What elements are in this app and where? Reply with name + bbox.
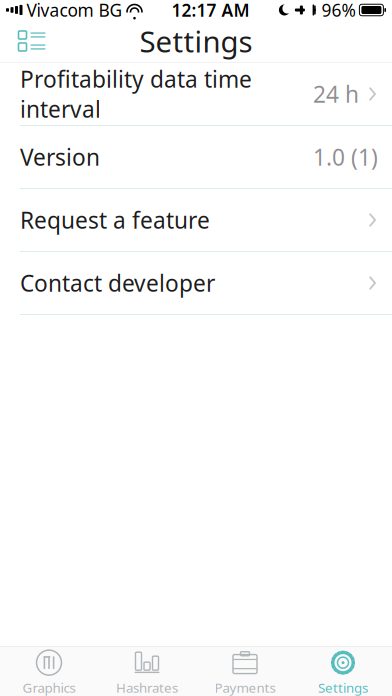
staticText: 24 h (313, 79, 359, 109)
staticText: Version (20, 142, 100, 172)
staticText: Contact developer (20, 268, 215, 298)
staticText: Profitability data time interval (20, 64, 252, 124)
staticText: Vivacom BG (26, 0, 122, 21)
button[interactable]: Graphics (0, 643, 98, 696)
button[interactable]: Contact developer (0, 252, 392, 315)
staticText: 12:17 AM (171, 0, 249, 21)
staticText: 1.0 (1) (313, 142, 378, 172)
button[interactable]: Payments (196, 643, 294, 696)
button[interactable]: Request a feature (0, 189, 392, 252)
button[interactable]: Version (0, 126, 392, 189)
button[interactable]: Profitability data time interval (0, 63, 392, 126)
staticText: Request a feature (20, 205, 210, 235)
button[interactable]: Settings (294, 643, 392, 696)
staticText: Hashrates (116, 679, 178, 696)
button[interactable]: Hashrates (98, 643, 196, 696)
staticText: Graphics (22, 679, 75, 696)
staticText: 96% (321, 0, 355, 21)
staticText: Settings (139, 21, 252, 60)
button[interactable]: Coins list (8, 22, 56, 60)
staticText: Settings (318, 679, 368, 696)
staticText: Payments (214, 679, 275, 696)
